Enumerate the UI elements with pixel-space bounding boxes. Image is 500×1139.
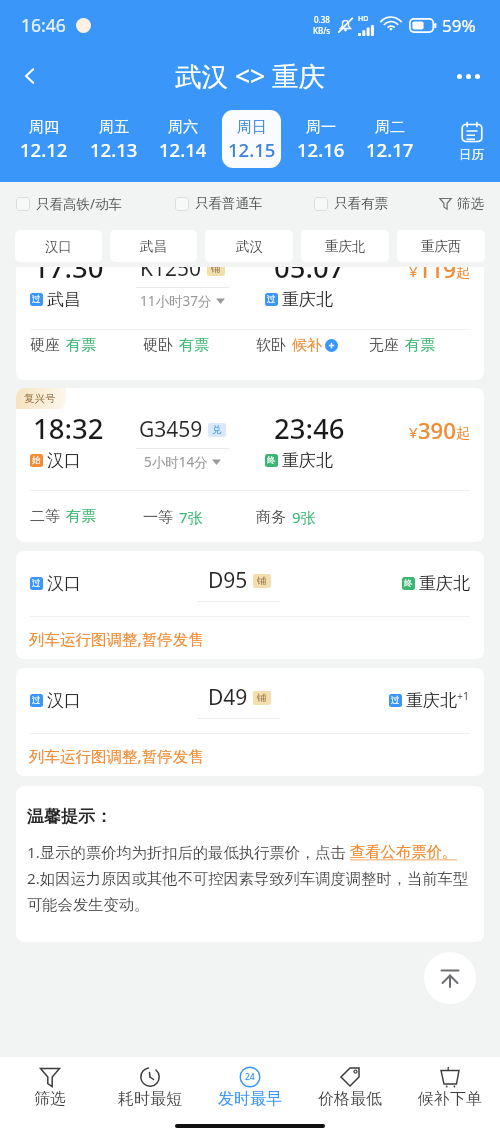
button[interactable]: 过 [16,668,484,776]
button[interactable]: 周四 [14,110,74,168]
staticText: 12.12 [20,137,68,162]
staticText: 起 [456,425,470,443]
button[interactable]: 重庆西 [397,230,485,262]
staticText: 24 [245,1071,255,1083]
staticText: 价格最低 [318,1089,382,1109]
staticText: 12.17 [366,137,414,162]
staticText: +1 [457,689,470,703]
button[interactable]: 只看高铁/动车 [16,195,123,213]
button[interactable]: 周五 [84,110,143,168]
staticText: 7张 [179,507,203,527]
staticText: D49 [208,683,248,712]
staticText: 1.显示的票价均为折扣后的最低执行票价，点击 [27,842,350,863]
button[interactable]: 筛选 [0,1057,100,1109]
staticText: 有票 [66,507,96,526]
staticText: 重庆北 [419,573,470,594]
staticText: 查看公布票价。 [350,842,458,861]
staticText: 过 [32,294,41,305]
staticText: 硬座 [30,336,60,355]
staticText: 商务 [256,508,286,527]
button[interactable]: 复兴号 [16,388,484,542]
button[interactable]: 汉口 [15,230,102,262]
staticText: 过 [267,294,276,305]
staticText: 0.38 [314,14,330,25]
staticText: 候补下单 [418,1089,482,1109]
staticText: 周五 [99,118,129,137]
button[interactable]: 武汉 [205,230,293,262]
staticText: 软卧 [256,336,286,355]
button[interactable]: 周六 [153,110,212,168]
staticText: 重庆北 [282,450,333,471]
staticText: 过 [32,695,41,706]
button[interactable]: 候补下单 [400,1057,500,1109]
staticText: 始 [32,455,41,466]
button[interactable]: 过 [16,551,484,659]
staticText: 18:32 [33,410,104,447]
button[interactable]: 日历 [442,102,500,182]
button[interactable]: 重庆北 [301,230,389,262]
staticText: 重庆北 [325,238,366,255]
button[interactable]: 24 [200,1057,300,1109]
staticText: 17:30 [33,267,104,286]
staticText: 铺 [257,575,267,587]
staticText: 有票 [405,336,435,355]
staticText: 一等 [143,508,173,527]
staticText: 119 [418,267,456,284]
button[interactable]: More options [448,56,488,96]
staticText: 武昌 [47,289,81,310]
staticText: 16:46 [21,13,66,37]
staticText: ¥ [409,422,418,442]
staticText: 耗时最短 [118,1089,182,1109]
staticText: 筛选 [34,1089,66,1109]
staticText: 硬卧 [143,336,173,355]
button[interactable]: 筛选 [439,195,484,212]
button[interactable]: 周日 [222,110,281,168]
staticText: 兑 [212,424,222,436]
staticText: 只看有票 [334,195,388,212]
staticText: 汉口 [47,690,81,711]
button[interactable]: 耗时最短 [100,1057,200,1109]
staticText: 武汉 <> 重庆 [175,58,326,94]
staticText: 5小时14分 [144,453,208,471]
staticText: 二等 [30,507,60,526]
staticText: D95 [208,566,248,595]
button[interactable]: 只看普通车 [175,195,263,212]
staticText: KB/s [313,25,331,36]
staticText: 温馨提示： [27,806,112,827]
button[interactable]: 价格最低 [300,1057,400,1109]
staticText: 终 [404,578,413,589]
staticText: 复兴号 [24,392,56,405]
staticText: 12.14 [159,137,207,162]
staticText: 23:46 [274,410,345,447]
button[interactable]: 周一 [291,110,350,168]
staticText: 只看高铁/动车 [36,195,123,213]
staticText: 周一 [306,118,336,137]
staticText: 汉口 [45,238,72,255]
button[interactable]: 武昌 [110,230,197,262]
staticText: 起 [456,267,470,282]
staticText: 周日 [237,118,267,137]
staticText: 列车运行图调整,暂停发售 [29,745,204,766]
staticText: 列车运行图调整,暂停发售 [29,628,204,649]
staticText: 有票 [179,336,209,355]
staticText: 周六 [168,118,198,137]
staticText: 重庆北 [282,289,333,310]
button[interactable]: 周二 [360,110,419,168]
staticText: 筛选 [457,195,484,212]
staticText: 2.如因运力原因或其他不可控因素导致列车调度调整时，当前车型可能会发生变动。 [27,868,473,915]
button[interactable]: 只看有票 [314,195,388,212]
staticText: 过 [32,578,41,589]
staticText: 武昌 [140,238,167,255]
staticText: 12.15 [228,137,276,162]
button[interactable]: Back [12,58,48,94]
staticText: 无座 [369,336,399,355]
staticText: 铺 [257,692,267,704]
button[interactable]: 17:30 [16,267,484,380]
staticText: 有票 [66,336,96,355]
staticText: 59% [442,14,476,37]
staticText: ¥ [409,267,418,281]
button[interactable]: Back to top [424,952,476,1004]
staticText: 重庆西 [421,238,462,255]
staticText: 候补 [292,336,322,355]
staticText: 武汉 [236,238,263,255]
